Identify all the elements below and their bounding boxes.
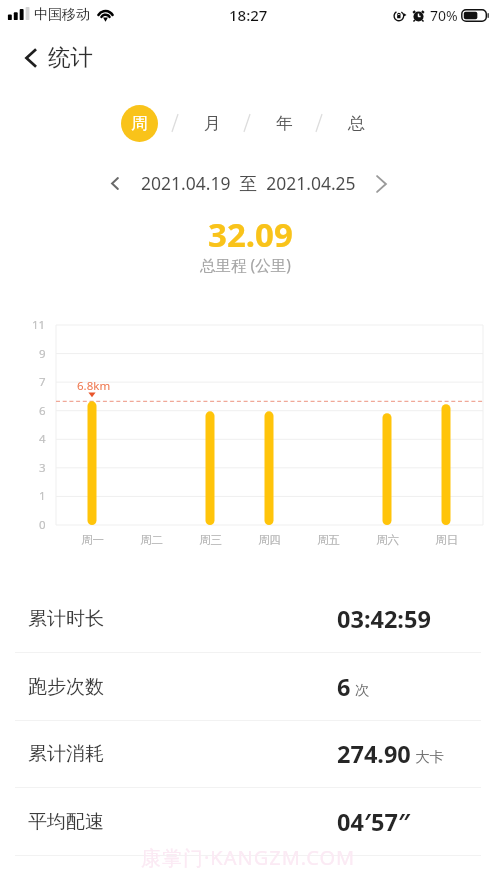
staticText: 总 [348,113,365,134]
staticText: 累计消耗 [28,742,104,766]
button[interactable]: 累计消耗 [0,720,497,788]
button[interactable]: Next week [366,169,396,199]
button[interactable]: 总 [338,105,375,142]
staticText: 3 [39,460,46,476]
button[interactable]: 年 [266,105,303,142]
staticText: 03:42:59 [337,603,431,633]
staticText: 9 [39,346,46,362]
button[interactable]: 累计时长 [0,585,497,653]
staticText: 周四 [258,533,281,547]
staticText: 6 [337,671,351,701]
staticText: 04′57″ [337,806,411,836]
staticText: 周二 [140,533,163,547]
staticText: 0 [39,517,46,533]
staticText: 6 [39,403,46,419]
button[interactable]: 周 [121,105,158,142]
staticText: 年 [276,113,293,134]
staticText: 中国移动 [34,6,90,24]
staticText: 18:27 [229,5,268,25]
staticText: 32.09 [208,212,293,256]
staticText: 跑步次数 [28,675,104,699]
button[interactable]: 月 [194,105,231,142]
staticText: 周 [131,113,148,134]
staticText: 周三 [199,533,222,547]
button[interactable]: 跑步次数 [0,653,497,721]
staticText: 月 [204,113,221,134]
staticText: 大卡 [415,748,444,766]
staticText: 2021.04.19 至 2021.04.25 [141,171,356,195]
button[interactable]: 平均配速 [0,788,497,856]
staticText: 70% [430,6,458,25]
staticText: 274.90 [337,738,411,768]
staticText: 周日 [435,533,458,547]
staticText: 4 [39,431,46,447]
staticText: 6.8km [77,378,111,394]
staticText: 平均配速 [28,810,104,834]
staticText: 总里程 (公里) [200,254,291,275]
staticText: 周一 [81,533,104,547]
staticText: 统计 [48,43,93,71]
button[interactable]: Previous week [100,168,130,198]
staticText: 11 [32,317,46,333]
staticText: 康掌门·KANGZM.COM [141,844,356,871]
staticText: 周五 [317,533,340,547]
staticText: 累计时长 [28,607,104,631]
button[interactable]: Back [19,41,107,75]
staticText: 次 [355,681,370,699]
staticText: 周六 [376,533,399,547]
staticText: 7 [39,374,46,390]
staticText: 1 [39,488,46,504]
